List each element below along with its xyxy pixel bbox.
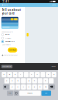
button[interactable]: Shift xyxy=(3,84,9,90)
button[interactable]: Classic xyxy=(0,33,25,36)
button[interactable]: b xyxy=(32,84,37,90)
button[interactable]: Select this card xyxy=(0,40,25,43)
staticText: m xyxy=(45,86,46,88)
button[interactable]: f xyxy=(21,78,26,83)
button[interactable]: go xyxy=(41,91,51,96)
staticText: Tell us about your card xyxy=(2,8,21,15)
staticText: y xyxy=(31,74,32,75)
staticText: 123 xyxy=(9,92,12,94)
staticText: g xyxy=(28,80,29,82)
staticText: w xyxy=(9,74,10,75)
button[interactable]: c xyxy=(21,84,26,90)
staticText: n xyxy=(40,86,41,88)
button[interactable]: v xyxy=(27,84,31,90)
button[interactable]: Continue xyxy=(8,47,17,52)
staticText: a xyxy=(6,80,7,82)
button[interactable]: z xyxy=(10,84,15,90)
button[interactable]: Done xyxy=(51,3,57,7)
staticText: r xyxy=(20,74,21,75)
button[interactable]: d xyxy=(15,78,20,83)
staticText: go xyxy=(45,92,47,94)
staticText: h xyxy=(34,80,35,82)
staticText: Classic xyxy=(5,34,10,35)
staticText: d xyxy=(17,80,18,82)
staticText: s xyxy=(12,80,13,82)
button[interactable]: u xyxy=(35,72,40,77)
button[interactable]: r xyxy=(18,72,23,77)
button[interactable]: p xyxy=(52,72,56,77)
button[interactable]: x xyxy=(15,84,20,90)
staticText: Done xyxy=(52,66,56,67)
button[interactable]: e xyxy=(13,72,17,77)
button[interactable]: space xyxy=(19,91,41,96)
button[interactable]: Delete xyxy=(49,84,55,90)
staticText: 9:41 xyxy=(2,0,9,3)
staticText: e xyxy=(15,74,16,75)
staticText: space xyxy=(27,92,32,94)
staticText: Learn more xyxy=(2,44,11,46)
button[interactable]: j xyxy=(38,78,42,83)
staticText: Back xyxy=(4,4,8,6)
staticText: v xyxy=(28,86,29,88)
button[interactable]: m xyxy=(43,84,48,90)
staticText: Secure checkout xyxy=(4,54,17,56)
staticText: Passwords xyxy=(2,66,11,67)
button[interactable]: l xyxy=(49,78,54,83)
button[interactable]: a xyxy=(4,78,9,83)
button[interactable]: Back xyxy=(1,3,9,7)
button[interactable]: i xyxy=(40,72,45,77)
button[interactable]: Premium xyxy=(0,36,25,40)
staticText: Continue xyxy=(9,49,16,51)
button[interactable]: Passwords xyxy=(1,65,12,68)
staticText: Select this card xyxy=(5,41,15,42)
button[interactable]: s xyxy=(10,78,15,83)
staticText: o xyxy=(48,74,49,75)
button[interactable]: t xyxy=(24,72,29,77)
button[interactable]: Switch keyboard xyxy=(14,91,18,96)
button[interactable]: o xyxy=(46,72,51,77)
button[interactable]: g xyxy=(27,78,31,83)
staticText: Premium xyxy=(5,37,11,39)
staticText: k xyxy=(45,80,46,82)
button[interactable]: Done xyxy=(51,65,57,68)
button[interactable]: q xyxy=(2,72,6,77)
button[interactable]: w xyxy=(7,72,12,77)
staticText: u xyxy=(37,74,38,75)
button[interactable]: h xyxy=(32,78,37,83)
button[interactable]: k xyxy=(43,78,48,83)
button[interactable]: y xyxy=(29,72,34,77)
button[interactable]: 123 xyxy=(7,91,13,96)
button[interactable]: n xyxy=(38,84,42,90)
